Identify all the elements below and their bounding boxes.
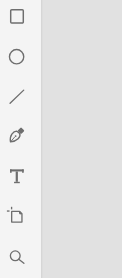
button[interactable]: Text tool: [0, 156, 41, 196]
button[interactable]: Frame tool: [0, 196, 41, 236]
button[interactable]: Pen tool: [0, 116, 41, 156]
button[interactable]: Ellipse tool: [0, 36, 41, 76]
button[interactable]: Line tool: [0, 76, 41, 116]
button[interactable]: Zoom tool: [0, 236, 41, 276]
button[interactable]: Rectangle tool: [0, 0, 41, 36]
